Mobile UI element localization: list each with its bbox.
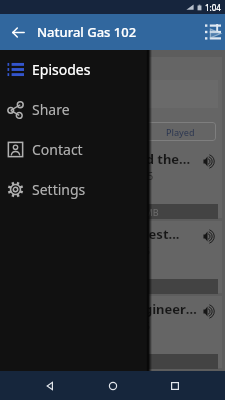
button[interactable]: Playlist [195, 14, 225, 50]
staticText: Episodes [32, 60, 91, 79]
staticText: Settings [32, 180, 86, 199]
button[interactable]: Share [0, 89, 152, 129]
button[interactable]: Download · 52.8 MB [3, 354, 218, 369]
staticText: Natural gas, shale and the... [9, 150, 191, 168]
button[interactable]: Downloaded · 48.2 MB [3, 204, 218, 219]
button[interactable]: Contact [0, 129, 152, 169]
staticText: Share [32, 100, 70, 119]
button[interactable]: Back [0, 14, 36, 50]
button[interactable]: Reservoir and gas engineering -... [3, 296, 222, 368]
staticText: Oil, gas and the Midwest... [9, 225, 180, 243]
staticText: Contact [32, 140, 83, 159]
button[interactable]: Played [3, 57, 222, 146]
button[interactable]: Episodes [0, 49, 152, 89]
staticText: Natural Gas 102 [37, 23, 137, 41]
staticText: 1:04 [205, 2, 221, 13]
button[interactable]: Download · 41.6 MB [3, 279, 218, 294]
staticText: Episode 11 · 38 min · Apr 2015 [9, 244, 151, 258]
staticText: Reservoir and gas engineering -... [9, 300, 200, 318]
staticText: Episode 10 · 45 min · Apr 2015 [9, 319, 151, 333]
button[interactable]: Settings [0, 169, 152, 209]
button[interactable]: Back [37, 373, 63, 399]
staticText: Played [166, 126, 195, 138]
button[interactable]: Natural gas, shale and the... [3, 146, 222, 218]
button[interactable]: Oil, gas and the Midwest... [3, 221, 222, 293]
button[interactable]: Recents [162, 373, 188, 399]
button[interactable]: Home [100, 373, 126, 399]
staticText: Downloaded · 48.2 MB [63, 206, 159, 218]
staticText: Episode 12 · 42 min · May 2015 [9, 169, 154, 183]
button[interactable]: Played [144, 122, 216, 141]
